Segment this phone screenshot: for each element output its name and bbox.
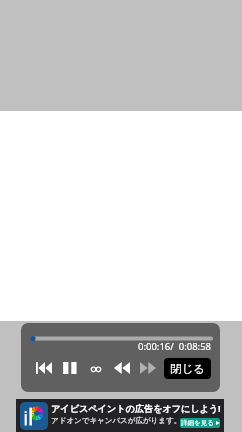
staticText: アドオンでキャンバスが広がります。 [51,416,182,425]
staticText: 閉じる [170,362,206,376]
button[interactable]: Fast forward [135,355,161,381]
button[interactable]: 詳細を見る [180,418,220,428]
staticText: 詳細を見る [181,419,214,427]
button[interactable]: Rewind [109,355,135,381]
staticText: 0:00:16/ 0:08:58 [138,340,211,353]
button[interactable]: Previous track [31,355,57,381]
button[interactable]: Loop [83,355,109,381]
button[interactable]: Pause [57,355,83,381]
button[interactable]: アイビスペイントの広告をオフにしよう! [16,399,224,432]
staticText: アイビスペイントの広告をオフにしよう! [51,402,221,414]
button[interactable]: 閉じる [164,358,211,379]
